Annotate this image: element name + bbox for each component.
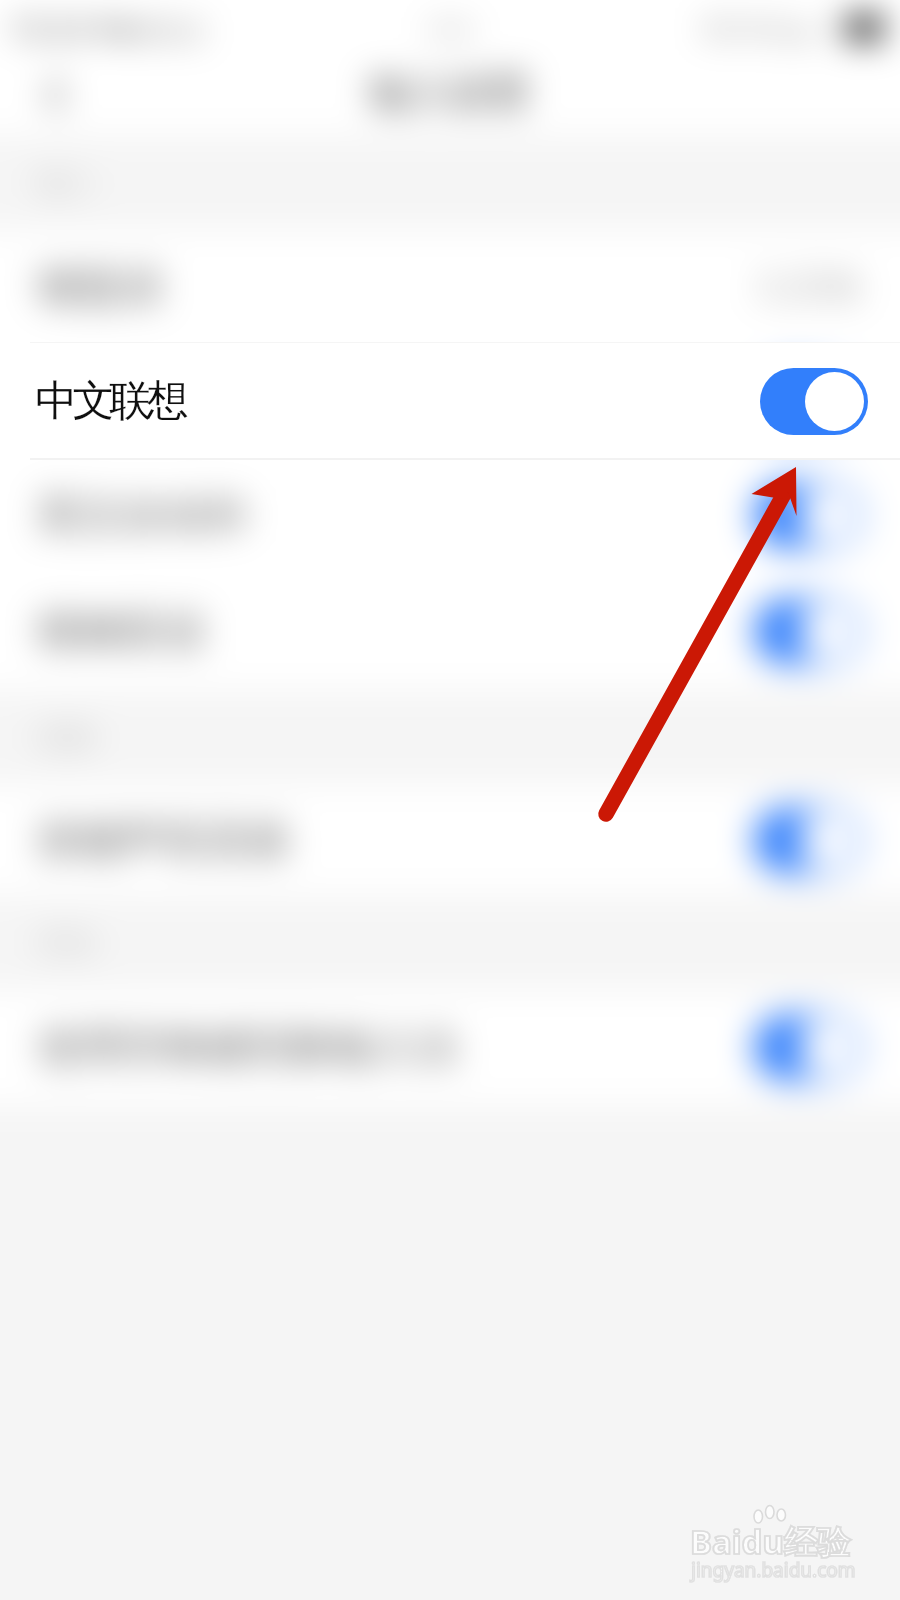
button[interactable]: 模糊音设 — [0, 572, 900, 690]
staticText: 模糊音设 — [38, 605, 206, 658]
staticText: 英文自动补 — [38, 489, 248, 542]
staticText: 输入设置 — [370, 67, 530, 117]
button[interactable]: 英文自动补, on — [754, 482, 862, 549]
staticText: jingyan.baidu.com — [691, 1557, 856, 1583]
button[interactable]: 键盘设 — [0, 230, 900, 343]
button[interactable]: 使用空格键切换输入法 — [0, 990, 900, 1105]
staticText: 键盘设 — [38, 260, 164, 313]
staticText: 中文联想 — [38, 375, 186, 428]
button[interactable]: 中文联想 — [0, 343, 900, 459]
staticText: Baidu经验 — [690, 1519, 850, 1564]
staticText: 10:24 ✉▸⊙▫▫ — [8, 7, 205, 49]
button[interactable]: 按键声音及振 — [0, 785, 900, 895]
staticText: 按键声音及振 — [38, 814, 290, 867]
button[interactable]: 中文联想, on — [754, 368, 862, 435]
button[interactable]: 模糊音设, on — [754, 598, 862, 665]
button[interactable]: 按键声音及振, on — [754, 807, 862, 874]
button[interactable]: 中文联想 switch, on — [760, 368, 868, 435]
staticText: 中文联想 — [38, 375, 206, 428]
button[interactable]: 使用空格键切换输入法, on — [754, 1014, 862, 1081]
staticText: 使用空格键切换输入法 — [38, 1021, 458, 1074]
button[interactable]: 英文自动补 — [0, 459, 900, 572]
button[interactable]: 中文联想 — [0, 343, 900, 459]
staticText: 九宫格 — [754, 264, 862, 309]
staticText: jingyan.baidu.com — [691, 1557, 856, 1583]
staticText: Baidu经验 — [690, 1519, 850, 1564]
